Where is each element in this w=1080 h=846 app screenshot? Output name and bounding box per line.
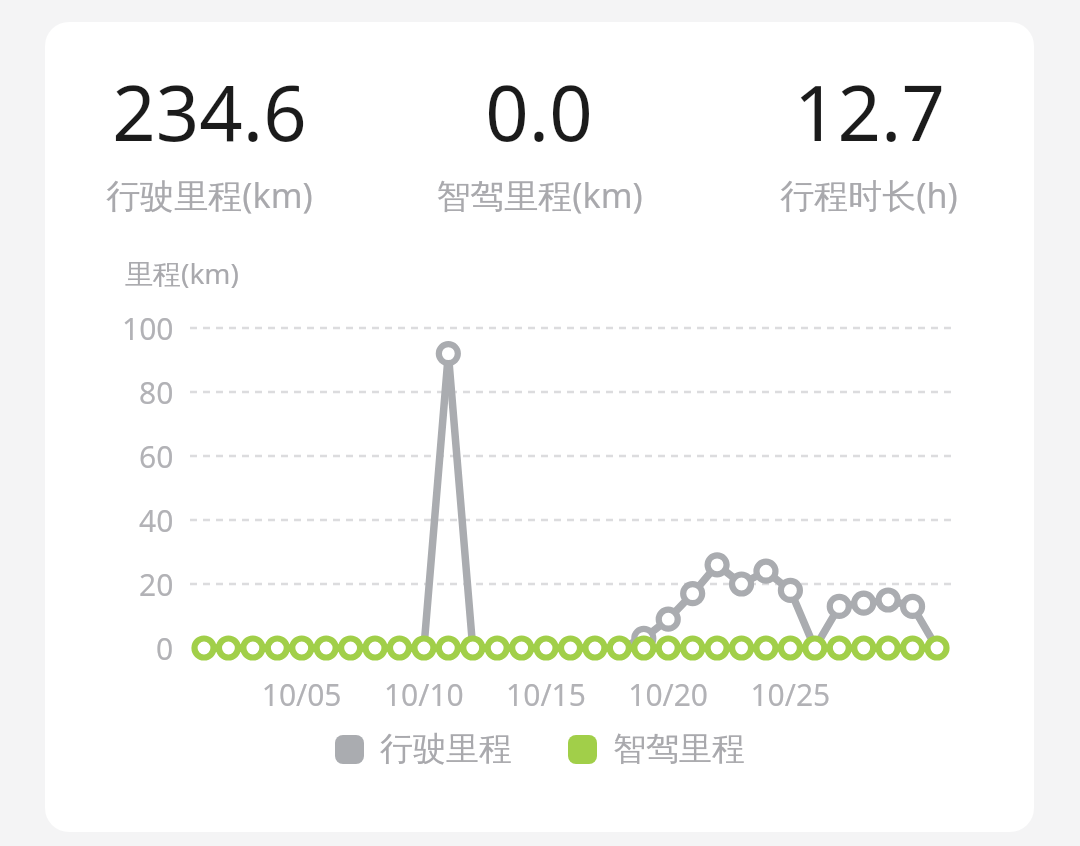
staticText: 里程(km) [125,254,239,292]
button[interactable]: 12.7 [704,60,1034,218]
staticText: 智驾里程 [613,728,745,770]
button[interactable]: 0.0 [374,60,704,218]
button[interactable]: 234.6 [45,60,374,218]
button[interactable]: 234.6 [45,22,1034,832]
other: 智驾里程 [568,735,597,764]
other: 行驶里程 [335,735,364,764]
staticText: 234.6 [112,60,307,164]
staticText: 智驾里程(km) [436,172,643,218]
button[interactable]: 行驶里程 [335,728,512,770]
button[interactable]: 智驾里程 [568,728,745,770]
staticText: 行驶里程 [380,728,512,770]
staticText: 12.7 [794,60,945,164]
staticText: 0.0 [485,60,593,164]
staticText: 行驶里程(km) [106,172,313,218]
staticText: 行程时长(h) [780,172,958,218]
